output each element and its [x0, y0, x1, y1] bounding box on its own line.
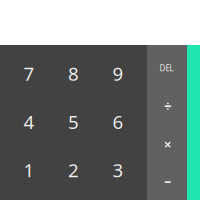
staticText: 3 — [112, 158, 123, 182]
staticText: 9 — [112, 61, 123, 86]
staticText: 5 — [68, 109, 79, 134]
button[interactable]: Divide — [148, 87, 188, 125]
button[interactable]: 9 — [98, 45, 147, 97]
button[interactable]: 8 — [49, 45, 98, 97]
staticText: 7 — [23, 61, 34, 86]
staticText: DEL — [160, 63, 174, 73]
button[interactable]: 4 — [0, 97, 49, 148]
staticText: 8 — [68, 61, 79, 86]
button[interactable]: DEL — [147, 49, 187, 87]
button[interactable]: 7 — [0, 45, 49, 97]
button[interactable]: Subtract — [148, 163, 188, 200]
staticText: 1 — [23, 158, 34, 182]
button[interactable]: 1 — [0, 148, 49, 200]
button[interactable]: Multiply — [148, 125, 188, 164]
staticText: 2 — [68, 158, 79, 182]
button[interactable]: 2 — [49, 148, 98, 200]
staticText: 4 — [23, 109, 34, 134]
button[interactable]: 3 — [98, 148, 147, 200]
button[interactable]: 6 — [98, 97, 147, 148]
staticText: 6 — [112, 109, 123, 134]
button[interactable]: 5 — [49, 97, 98, 148]
